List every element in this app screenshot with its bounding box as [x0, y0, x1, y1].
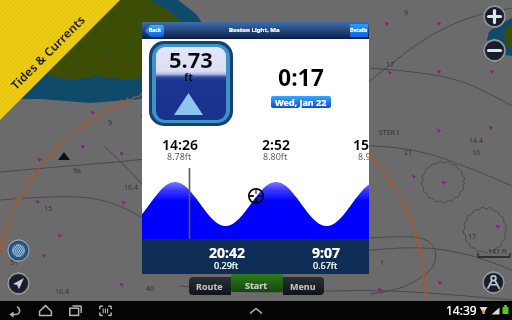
staticText: Start — [245, 279, 268, 291]
staticText: 9a — [73, 166, 81, 176]
staticText: 147 ft — [488, 247, 507, 257]
staticText: 16.4 — [55, 287, 69, 297]
staticText: 15 — [44, 204, 53, 214]
staticText: 0.29ft — [214, 259, 239, 271]
button[interactable]: Recent apps — [68, 303, 83, 318]
staticText: 21 — [404, 148, 413, 158]
staticText: 1 — [380, 258, 385, 268]
staticText: 9:07 — [312, 243, 340, 262]
button[interactable]: Hide navigation bar — [249, 305, 263, 319]
staticText: 16 — [141, 228, 150, 238]
staticText: 17 — [386, 60, 395, 70]
staticText: Route — [196, 280, 223, 292]
staticText: 14:26 — [162, 135, 198, 154]
staticText: STER I — [379, 128, 400, 138]
staticText: Boston Light, Ma — [229, 26, 280, 34]
button[interactable]: Menu — [283, 277, 324, 295]
staticText: 9 — [404, 8, 409, 18]
staticText: 16.4 — [124, 183, 138, 193]
button[interactable]: Home — [38, 303, 53, 318]
staticText: 8.90ft — [358, 150, 369, 162]
button[interactable]: Back — [145, 25, 164, 37]
button[interactable]: Back — [7, 303, 22, 318]
staticText: 0.67ft — [313, 259, 338, 271]
staticText: 8.78ft — [167, 150, 192, 162]
staticText: 20:42 — [209, 243, 245, 262]
staticText: Back — [149, 27, 162, 34]
button[interactable]: Start — [231, 274, 283, 292]
staticText: 2:52 — [262, 135, 290, 154]
button[interactable]: Zoom in — [483, 5, 506, 28]
button[interactable]: Screenshot — [98, 303, 113, 318]
staticText: 16 — [472, 148, 481, 158]
button[interactable]: Details — [350, 24, 368, 37]
staticText: 15:25 — [353, 135, 369, 154]
staticText: 17 — [468, 232, 477, 242]
staticText: ft — [184, 69, 194, 84]
button[interactable]: Zoom out — [483, 39, 506, 62]
staticText: 5.73 — [169, 47, 213, 74]
staticText: 0:17 — [278, 61, 324, 92]
staticText: 9 — [108, 118, 113, 128]
button[interactable]: Wed, Jan 22 — [271, 96, 331, 108]
staticText: Menu — [290, 280, 316, 292]
staticText: 14:39 — [446, 302, 477, 318]
staticText: Wed, Jan 22 — [275, 96, 327, 108]
staticText: 14.4 — [469, 136, 483, 146]
staticText: 51 — [10, 258, 19, 268]
staticText: Details — [350, 27, 368, 34]
staticText: 40 — [146, 284, 155, 294]
staticText: Tides & Currents — [7, 11, 88, 93]
button[interactable]: Map layers — [7, 239, 30, 262]
button[interactable]: Route — [189, 277, 231, 295]
staticText: 8.80ft — [263, 150, 288, 162]
button[interactable]: Measure distance — [482, 271, 505, 294]
button[interactable]: My location — [7, 272, 30, 295]
